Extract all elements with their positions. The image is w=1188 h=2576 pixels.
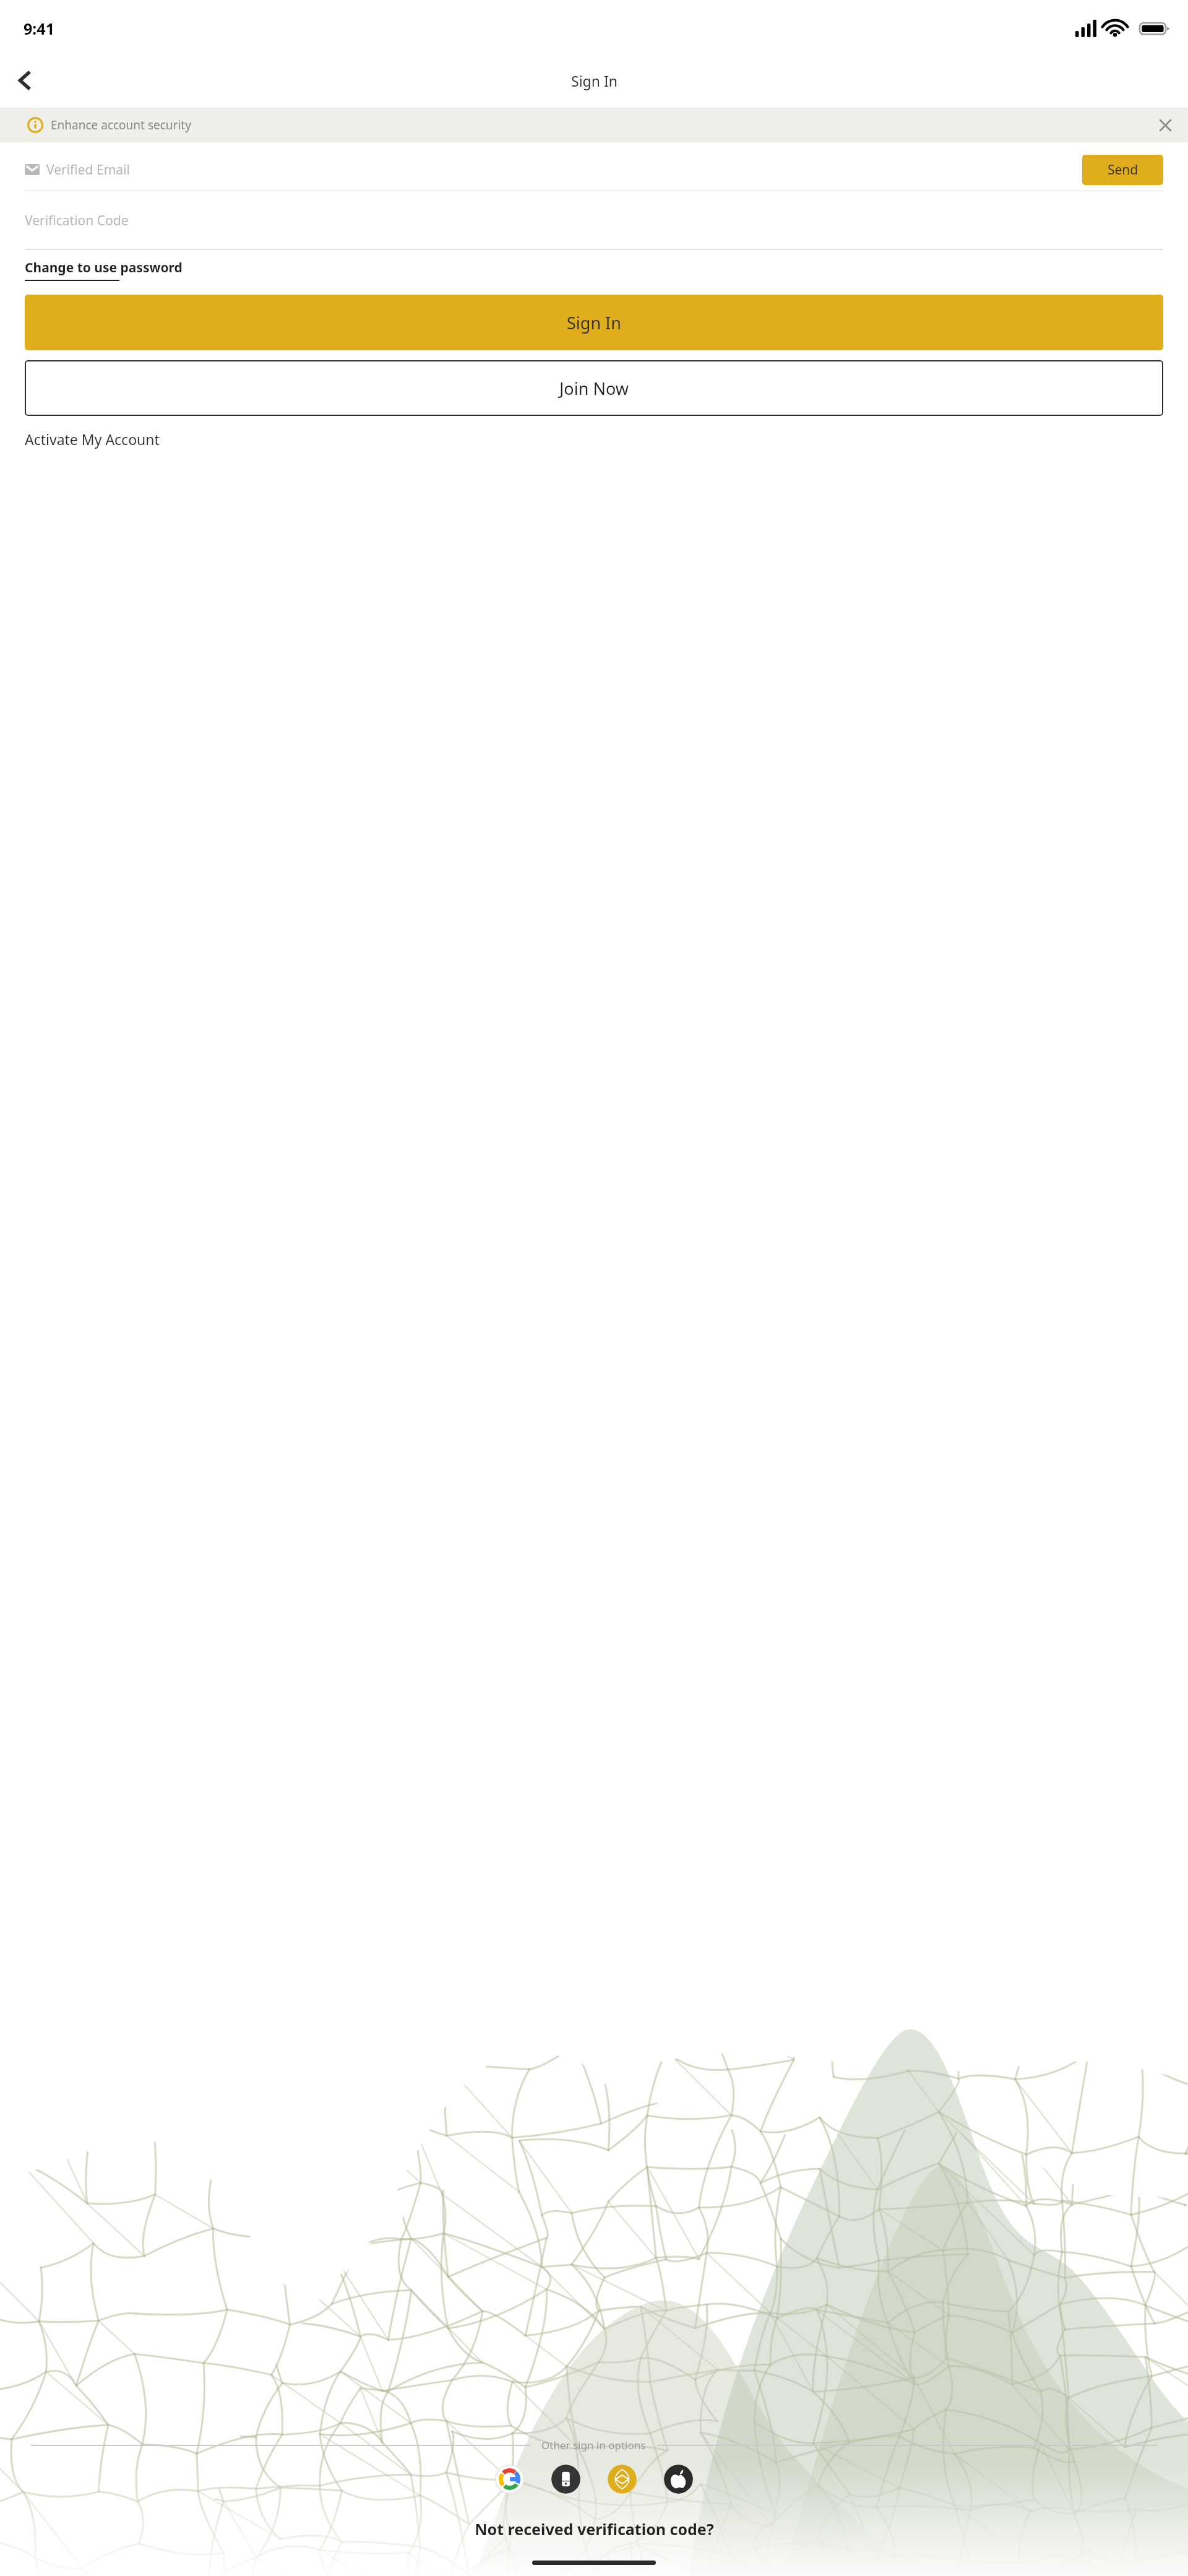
staticText: Verification Code <box>25 212 129 230</box>
staticText: Activate My Account <box>25 430 160 449</box>
staticText: Send <box>1108 161 1138 179</box>
staticText: 9:41 <box>24 18 54 39</box>
button[interactable]: Verified Email <box>25 149 1082 191</box>
button[interactable]: Send <box>1082 155 1163 185</box>
button[interactable]: Change to use password <box>25 259 183 281</box>
button[interactable]: Enhance account security <box>0 108 1188 142</box>
staticText: Sign In <box>567 311 621 334</box>
button[interactable]: Sign in with member account <box>608 2465 637 2494</box>
staticText: Not received verification code? <box>475 2518 714 2539</box>
staticText: Change to use password <box>25 259 183 277</box>
button[interactable]: Back <box>7 63 42 98</box>
button[interactable]: Activate My Account <box>25 430 160 449</box>
button[interactable]: Sign in with device <box>551 2465 580 2494</box>
button[interactable]: Sign in with Google <box>495 2465 524 2494</box>
button[interactable]: Not received verification code? <box>475 2518 714 2539</box>
staticText: Other sign in options <box>541 2438 646 2452</box>
button[interactable]: Sign in with Apple <box>664 2465 693 2494</box>
button[interactable]: Join Now <box>25 360 1163 416</box>
staticText: Sign In <box>571 71 618 90</box>
staticText: Verified Email <box>46 161 130 179</box>
staticText: Join Now <box>559 377 629 400</box>
button[interactable]: Verification Code <box>25 191 1163 249</box>
button[interactable]: Sign In <box>25 295 1163 350</box>
staticText: Enhance account security <box>51 117 191 133</box>
button[interactable]: Dismiss <box>1150 110 1181 140</box>
